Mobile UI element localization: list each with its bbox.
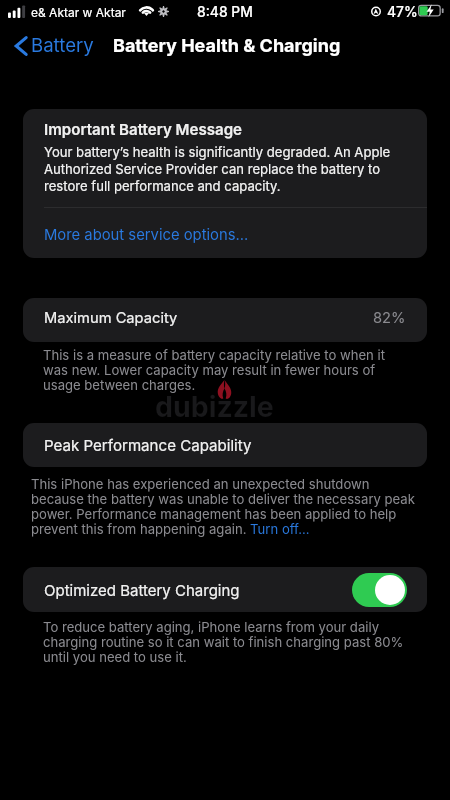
- button[interactable]: Peak Performance Capability: [23, 423, 427, 467]
- button[interactable]: More about service options...: [23, 208, 427, 258]
- staticText: Battery Health & Charging: [113, 35, 341, 57]
- staticText: dubizzle: [155, 389, 274, 423]
- staticText: 82%: [373, 309, 406, 327]
- button[interactable]: Optimized Battery Charging toggle: [352, 573, 407, 607]
- staticText: Maximum Capacity: [44, 309, 178, 327]
- staticText: 8:48 PM: [197, 4, 253, 21]
- staticText: 47%: [387, 4, 418, 21]
- staticText: To reduce battery aging, iPhone learns f…: [43, 619, 447, 665]
- staticText: More about service options...: [44, 226, 249, 244]
- staticText: e& Aktar w Aktar: [31, 5, 126, 20]
- staticText: Optimized Battery Charging: [44, 581, 240, 599]
- staticText: Your battery’s health is significantly d…: [44, 144, 391, 194]
- staticText: Important Battery Message: [44, 120, 243, 138]
- staticText: Battery: [31, 34, 94, 57]
- staticText: This iPhone has experienced an unexpecte…: [31, 476, 447, 537]
- staticText: Peak Performance Capability: [44, 436, 252, 454]
- button[interactable]: Maximum Capacity: [23, 298, 427, 342]
- staticText: This is a measure of battery capacity re…: [43, 347, 447, 393]
- button[interactable]: Battery: [0, 30, 102, 61]
